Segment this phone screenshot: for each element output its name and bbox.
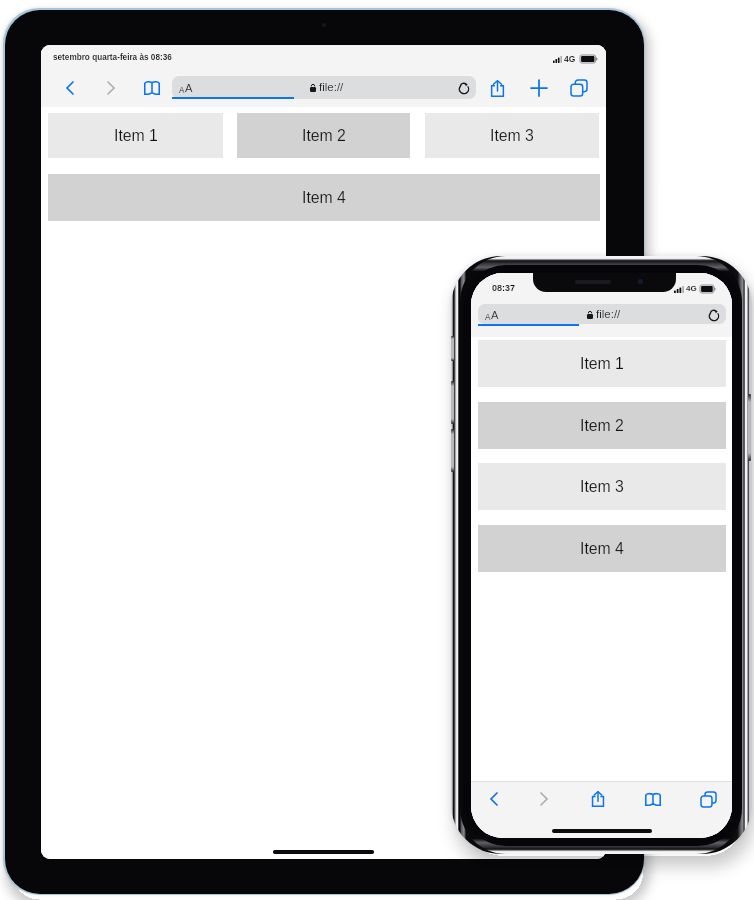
staticText: Item 1 (114, 127, 158, 145)
button[interactable]: Tabs (694, 785, 722, 813)
button[interactable]: Share (484, 75, 510, 101)
button[interactable]: Bookmarks (639, 785, 667, 813)
staticText: setembro quarta-feira às 08:36 (53, 53, 172, 62)
button[interactable]: Item 2 (478, 402, 726, 449)
button[interactable]: Back (480, 785, 508, 813)
button[interactable]: Share (584, 785, 612, 813)
button[interactable]: Item 1 (48, 113, 223, 158)
button[interactable]: New tab (526, 75, 552, 101)
button[interactable]: A (478, 304, 726, 324)
staticText: A (179, 86, 185, 95)
staticText: file:// (319, 81, 344, 94)
staticText: Item 4 (580, 540, 624, 558)
button[interactable]: Item 2 (237, 113, 410, 158)
button[interactable]: Item 3 (425, 113, 599, 158)
button[interactable]: Reload (456, 79, 473, 96)
staticText: 4G (564, 54, 576, 63)
staticText: Item 2 (302, 127, 346, 145)
button[interactable]: Bookmarks (139, 75, 165, 101)
staticText: A (185, 82, 193, 95)
button[interactable]: Item 4 (478, 525, 726, 572)
staticText: A (485, 313, 491, 322)
button[interactable]: Back (57, 75, 83, 101)
button[interactable]: Item 1 (478, 340, 726, 387)
button[interactable]: A (172, 76, 476, 99)
staticText: A (491, 309, 499, 322)
staticText: 08:37 (492, 283, 516, 293)
staticText: Item 2 (580, 417, 624, 435)
button[interactable]: Reload (706, 306, 723, 323)
button[interactable]: Forward (98, 75, 124, 101)
staticText: 4G (686, 284, 697, 293)
button[interactable]: Tabs (566, 75, 592, 101)
staticText: Item 3 (490, 127, 534, 145)
staticText: Item 4 (302, 189, 346, 207)
staticText: Item 3 (580, 478, 624, 496)
staticText: Item 1 (580, 355, 624, 373)
button[interactable]: Item 4 (48, 174, 600, 221)
button[interactable]: Forward (530, 785, 558, 813)
button[interactable]: Item 3 (478, 463, 726, 510)
staticText: file:// (596, 308, 621, 321)
